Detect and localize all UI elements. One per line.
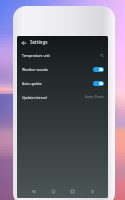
button[interactable]: Temperature unit: [17, 48, 108, 62]
button[interactable]: Weather sounds: [17, 62, 108, 76]
button[interactable]: Recents: [67, 186, 77, 196]
button[interactable]: Toggle: [93, 67, 104, 72]
button[interactable]: Update interval: [17, 90, 108, 104]
staticText: Every 3 hour: [85, 95, 104, 99]
button[interactable]: Back: [28, 186, 38, 196]
staticText: Weather sounds: [22, 67, 48, 72]
staticText: Update interval: [22, 95, 47, 100]
button[interactable]: Toggle: [93, 81, 104, 86]
staticText: Auto update: [22, 81, 42, 86]
button[interactable]: Menu: [87, 186, 97, 196]
staticText: °C: [100, 53, 104, 58]
staticText: Temperature unit: [22, 53, 50, 58]
button[interactable]: Back: [19, 38, 28, 47]
staticText: Settings: [30, 39, 48, 45]
button[interactable]: Home: [48, 186, 58, 196]
button[interactable]: Auto update: [17, 76, 108, 90]
